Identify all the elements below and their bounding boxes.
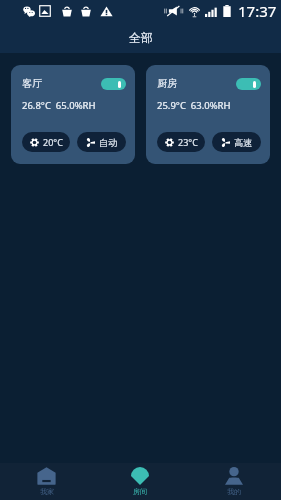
button[interactable]: 房间 xyxy=(93,463,187,500)
button[interactable]: 高速 xyxy=(212,132,261,152)
staticText: 全部 xyxy=(129,30,153,45)
staticText: 我家 xyxy=(40,487,54,496)
staticText: 23°C xyxy=(178,136,198,148)
staticText: 厨房 xyxy=(157,77,177,90)
staticText: 17:37 xyxy=(238,1,277,21)
staticText: 房间 xyxy=(133,487,147,496)
button[interactable]: 我的 xyxy=(187,463,281,500)
button[interactable]: 23°C xyxy=(157,132,205,152)
button[interactable]: Power toggle xyxy=(101,78,126,90)
button[interactable]: Power toggle xyxy=(236,78,261,90)
staticText: 20°C xyxy=(43,136,63,148)
staticText: 我的 xyxy=(227,487,241,496)
button[interactable]: 客厅 xyxy=(11,65,135,164)
staticText: 高速 xyxy=(234,137,252,148)
button[interactable]: 自动 xyxy=(77,132,126,152)
staticText: 26.8°C 65.0%RH xyxy=(22,99,96,112)
button[interactable]: 厨房 xyxy=(146,65,270,164)
staticText: 25.9°C 63.0%RH xyxy=(157,99,231,112)
staticText: 自动 xyxy=(99,137,117,148)
button[interactable]: 我家 xyxy=(0,463,93,500)
button[interactable]: 20°C xyxy=(22,132,70,152)
staticText: 客厅 xyxy=(22,77,42,90)
